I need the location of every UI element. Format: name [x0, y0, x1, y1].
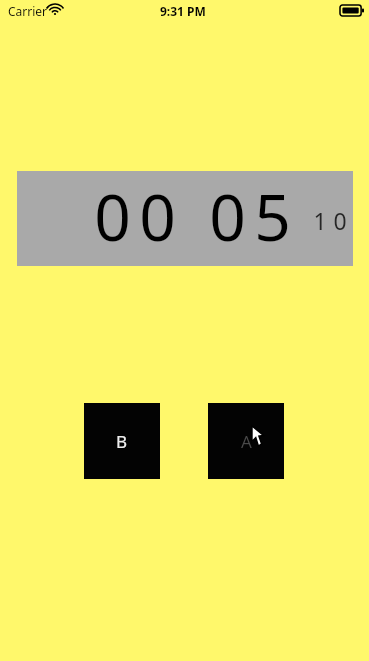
staticText: B	[116, 430, 128, 453]
staticText: 0	[209, 173, 246, 260]
staticText: 0	[333, 205, 347, 236]
button[interactable]: B	[84, 403, 160, 479]
staticText: 0	[94, 173, 131, 260]
staticText: 5	[254, 173, 291, 260]
button[interactable]: A	[208, 403, 284, 479]
staticText: 0	[139, 173, 176, 260]
button[interactable]: 0	[17, 171, 353, 266]
staticText: 9:31 PM	[160, 3, 206, 19]
other: Pointer	[252, 426, 266, 446]
staticText: A	[241, 430, 252, 453]
staticText: 1	[313, 205, 327, 236]
staticText: Carrier	[8, 3, 48, 19]
